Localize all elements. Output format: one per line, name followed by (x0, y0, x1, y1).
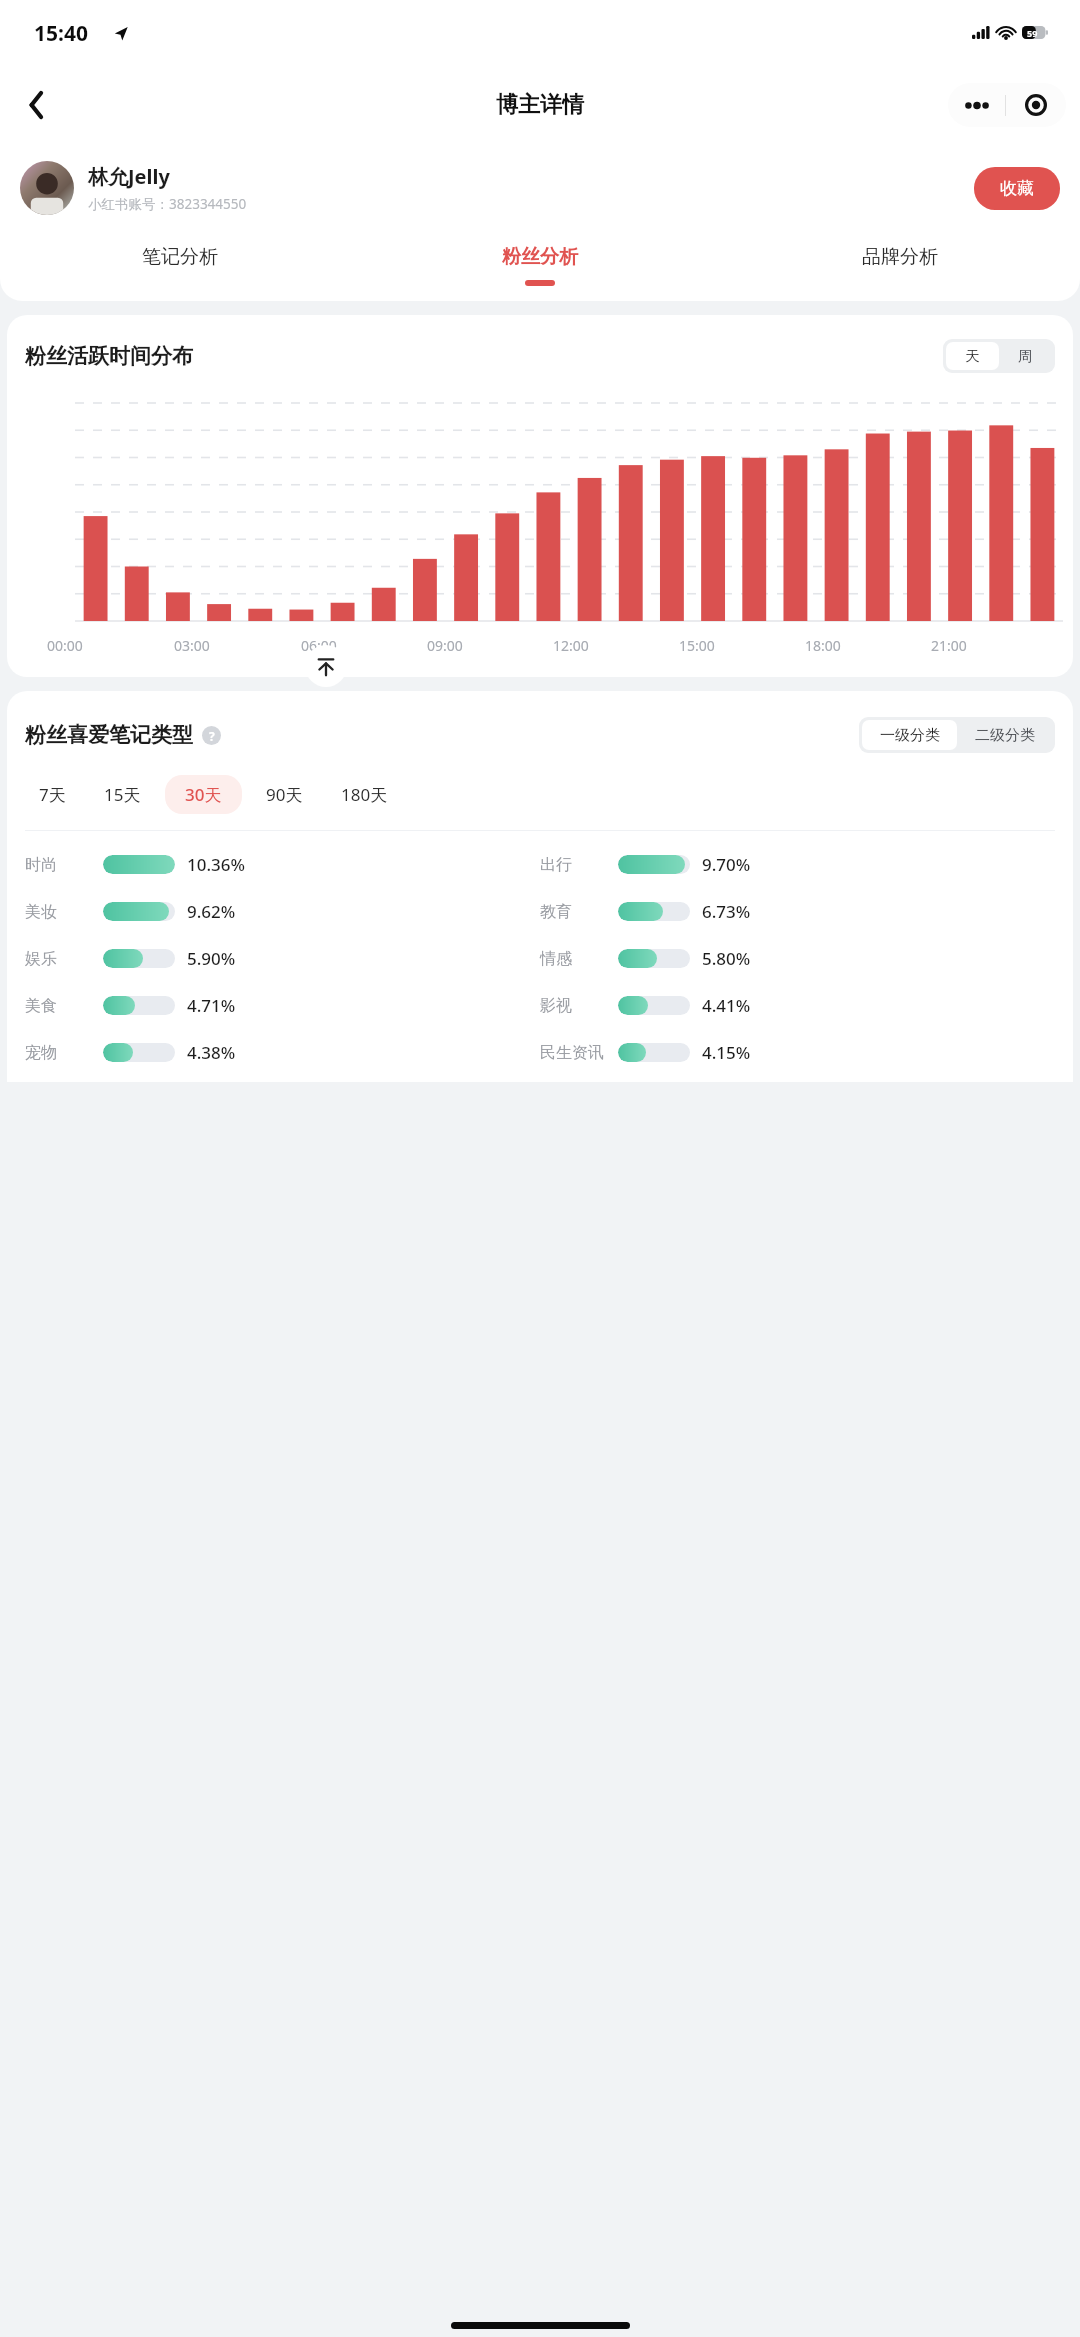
staticText: 收藏 (1000, 178, 1034, 199)
staticText: 7天 (39, 783, 66, 806)
button[interactable]: 天 (946, 342, 999, 370)
staticText: 影视 (540, 996, 618, 1016)
staticText: 天 (965, 347, 980, 365)
button[interactable]: 7天 (25, 775, 80, 814)
staticText: 15:40 (34, 19, 88, 48)
button[interactable]: 一级分类 (862, 720, 957, 750)
button[interactable]: Back (14, 83, 58, 127)
staticText: 4.38% (187, 1041, 236, 1064)
button[interactable]: 时尚 (25, 853, 540, 876)
button[interactable]: 二级分类 (957, 720, 1052, 750)
button[interactable]: 15天 (90, 775, 155, 814)
staticText: 90天 (266, 783, 303, 806)
staticText: 10.36% (187, 853, 246, 876)
staticText: 民生资讯 (540, 1043, 618, 1063)
staticText: 情感 (540, 949, 618, 969)
staticText: 林允Jelly (88, 163, 170, 190)
other: More (948, 101, 1005, 110)
staticText: 粉丝分析 (502, 245, 578, 269)
staticText: 4.71% (187, 994, 236, 1017)
staticText: 粉丝活跃时间分布 (25, 343, 193, 369)
button[interactable]: 宠物 (25, 1041, 540, 1064)
button[interactable]: 情感 (540, 947, 1055, 970)
staticText: 09:00 (427, 636, 463, 655)
staticText: 18:00 (805, 636, 841, 655)
button[interactable]: Scroll to top (305, 645, 347, 687)
staticText: 笔记分析 (142, 245, 218, 269)
staticText: 6.73% (702, 900, 751, 923)
staticText: 时尚 (25, 855, 103, 875)
staticText: 品牌分析 (862, 245, 938, 269)
staticText: 宠物 (25, 1043, 103, 1063)
staticText: 5.90% (187, 947, 236, 970)
staticText: 5.80% (702, 947, 751, 970)
staticText: ? (209, 728, 215, 744)
staticText: 06:00 (301, 636, 337, 655)
button[interactable]: 笔记分析 (0, 245, 360, 286)
button[interactable]: 收藏 (974, 167, 1060, 210)
button[interactable]: 周 (999, 342, 1052, 370)
staticText: 4.41% (702, 994, 751, 1017)
button[interactable]: 品牌分析 (720, 245, 1080, 286)
staticText: 12:00 (553, 636, 589, 655)
staticText: 00:00 (47, 636, 83, 655)
button[interactable]: 美食 (25, 994, 540, 1017)
staticText: 美食 (25, 996, 103, 1016)
staticText: 二级分类 (975, 726, 1035, 745)
staticText: 15天 (104, 783, 141, 806)
button[interactable]: Help (202, 726, 221, 745)
staticText: 30天 (185, 783, 222, 806)
staticText: 4.15% (702, 1041, 751, 1064)
staticText: 周 (1018, 347, 1033, 365)
staticText: 出行 (540, 855, 618, 875)
other: Target (1006, 94, 1066, 116)
staticText: 03:00 (174, 636, 210, 655)
button[interactable]: 教育 (540, 900, 1055, 923)
button[interactable]: 美妆 (25, 900, 540, 923)
button[interactable]: 民生资讯 (540, 1041, 1055, 1064)
staticText: 59 (1027, 27, 1038, 39)
staticText: 粉丝喜爱笔记类型 (25, 722, 193, 748)
staticText: 教育 (540, 902, 618, 922)
staticText: 美妆 (25, 902, 103, 922)
button[interactable]: 粉丝分析 (360, 245, 720, 286)
button[interactable]: 180天 (327, 775, 402, 814)
staticText: 180天 (341, 783, 388, 806)
staticText: 15:00 (679, 636, 715, 655)
button[interactable]: 30天 (165, 775, 242, 814)
button[interactable]: 90天 (252, 775, 317, 814)
staticText: 博主详情 (496, 91, 584, 119)
staticText: 9.62% (187, 900, 236, 923)
staticText: 21:00 (931, 636, 967, 655)
button[interactable]: 影视 (540, 994, 1055, 1017)
staticText: 娱乐 (25, 949, 103, 969)
staticText: 小红书账号：3823344550 (88, 195, 247, 213)
button[interactable]: 娱乐 (25, 947, 540, 970)
button[interactable]: 林允Jelly (0, 147, 1080, 229)
button[interactable]: 出行 (540, 853, 1055, 876)
staticText: 一级分类 (880, 726, 940, 745)
staticText: 9.70% (702, 853, 751, 876)
button[interactable]: More (948, 83, 1066, 127)
